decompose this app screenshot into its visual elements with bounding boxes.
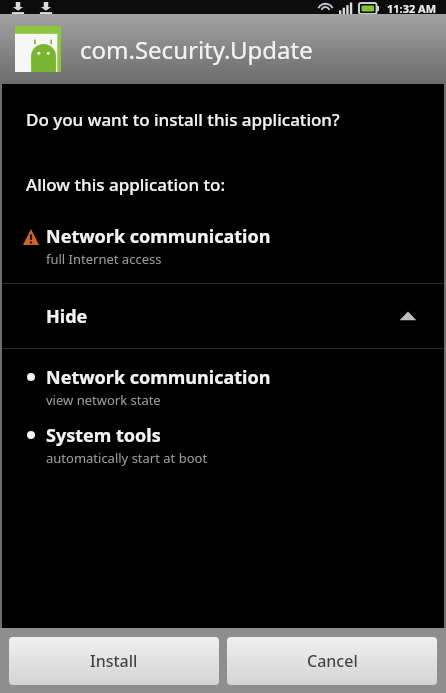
staticText: Do you want to install this application?: [26, 108, 340, 131]
staticText: 11:32 AM: [387, 1, 437, 14]
staticText: view network state: [46, 391, 161, 409]
staticText: automatically start at boot: [46, 449, 208, 467]
staticText: Network communication: [46, 365, 271, 390]
button[interactable]: Network communication: [0, 222, 446, 270]
staticText: full Internet access: [46, 250, 162, 268]
button[interactable]: System tools: [0, 421, 446, 469]
staticText: Install: [90, 650, 138, 672]
button[interactable]: Hide: [0, 284, 446, 348]
button[interactable]: Network communication: [0, 363, 446, 411]
other: Collapse: [396, 304, 420, 328]
staticText: Network communication: [46, 224, 271, 249]
staticText: Hide: [46, 304, 88, 329]
staticText: System tools: [46, 423, 161, 448]
staticText: Cancel: [307, 650, 358, 672]
button[interactable]: Cancel: [227, 637, 437, 685]
button[interactable]: Install: [9, 637, 219, 685]
staticText: Allow this application to:: [26, 173, 226, 196]
staticText: com.Security.Update: [80, 33, 313, 66]
